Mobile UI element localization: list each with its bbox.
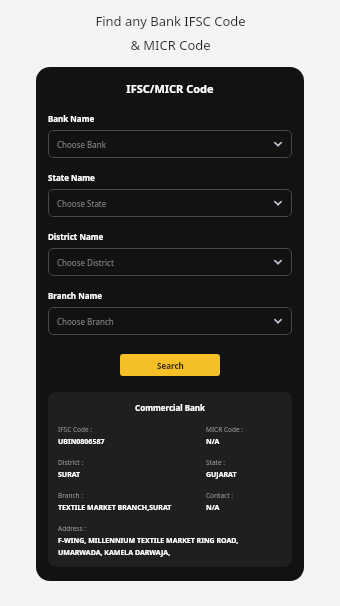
staticText: N/A bbox=[206, 503, 220, 513]
staticText: Branch Name bbox=[48, 290, 103, 301]
staticText: Find any Bank IFSC Code bbox=[95, 12, 246, 30]
staticText: UBIN0806587 bbox=[58, 437, 105, 447]
staticText: IFSC/MICR Code bbox=[48, 81, 292, 96]
staticText: TEXTILE MARKET BRANCH,SURAT bbox=[58, 503, 172, 513]
staticText: State : bbox=[206, 458, 226, 467]
staticText: State Name bbox=[48, 172, 95, 183]
staticText: IFSC Code : bbox=[58, 425, 93, 434]
staticText: Contact : bbox=[206, 491, 233, 500]
staticText: Address : bbox=[58, 524, 87, 533]
button[interactable]: Bank Name bbox=[48, 130, 292, 158]
staticText: Bank Name bbox=[48, 113, 95, 124]
staticText: Branch : bbox=[58, 491, 84, 500]
staticText: GUJARAT bbox=[206, 470, 237, 480]
staticText: Choose State bbox=[57, 198, 273, 209]
staticText: & MICR Code bbox=[130, 36, 211, 54]
staticText: SURAT bbox=[58, 470, 81, 480]
button[interactable]: Search bbox=[120, 354, 220, 376]
button[interactable]: District Name bbox=[48, 248, 292, 276]
staticText: F-WING, MILLENNIUM TEXTILE MARKET RING R… bbox=[58, 536, 282, 557]
button[interactable]: State Name bbox=[48, 189, 292, 217]
button[interactable]: Branch Name bbox=[48, 307, 292, 335]
staticText: Commercial Bank bbox=[58, 402, 282, 413]
staticText: MICR Code : bbox=[206, 425, 244, 434]
staticText: Search bbox=[157, 360, 184, 371]
staticText: Choose Bank bbox=[57, 139, 273, 150]
staticText: N/A bbox=[206, 437, 220, 447]
staticText: Choose Branch bbox=[57, 316, 273, 327]
staticText: District : bbox=[58, 458, 84, 467]
staticText: District Name bbox=[48, 231, 104, 242]
staticText: Choose District bbox=[57, 257, 273, 268]
